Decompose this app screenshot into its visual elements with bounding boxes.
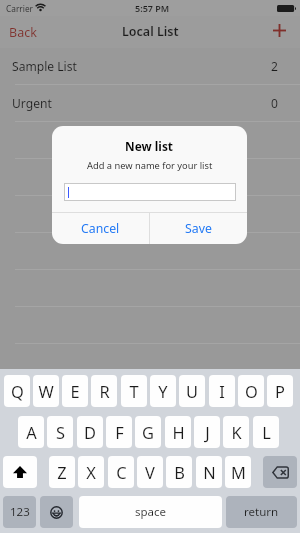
staticText: N (203, 461, 216, 483)
staticText: G (142, 421, 154, 443)
staticText: 5:57 PM (135, 2, 170, 14)
button[interactable]: return (226, 496, 297, 528)
staticText: Sample List (12, 58, 77, 74)
staticText: E (70, 380, 80, 402)
staticText: V (145, 461, 155, 483)
staticText: I (219, 380, 225, 402)
staticText: Z (57, 461, 67, 483)
staticText: F (115, 421, 124, 443)
button[interactable]: Z (49, 456, 75, 488)
button[interactable]: Save (150, 213, 247, 244)
staticText: J (205, 421, 210, 443)
button[interactable]: W (33, 375, 59, 407)
button[interactable] (65, 184, 235, 200)
button[interactable]: P (267, 375, 293, 407)
button[interactable]: K (223, 416, 249, 448)
staticText: 0 (271, 95, 278, 111)
staticText: L (262, 421, 271, 443)
button[interactable]: Shift (3, 456, 37, 488)
button[interactable]: Cancel (52, 213, 149, 244)
staticText: R (99, 380, 110, 402)
staticText: Y (158, 380, 168, 402)
button[interactable]: Sample List (0, 48, 300, 85)
staticText: O (245, 380, 258, 402)
staticText: Add a new name for your list (87, 159, 213, 172)
staticText: C (116, 461, 127, 483)
staticText: T (129, 380, 139, 402)
staticText: Cancel (81, 220, 120, 237)
button[interactable]: E (62, 375, 88, 407)
button[interactable]: N (196, 456, 222, 488)
button[interactable]: L (253, 416, 279, 448)
staticText: W (38, 380, 54, 402)
staticText: return (244, 504, 279, 520)
button[interactable]: G (135, 416, 161, 448)
staticText: New list (125, 138, 174, 154)
button[interactable]: F (106, 416, 132, 448)
staticText: A (26, 421, 37, 443)
button[interactable]: I (209, 375, 235, 407)
staticText: Q (11, 380, 24, 402)
button[interactable]: J (194, 416, 220, 448)
button[interactable]: X (78, 456, 104, 488)
button[interactable]: space (79, 496, 222, 528)
staticText: S (56, 421, 65, 443)
staticText: B (174, 461, 185, 483)
staticText: M (231, 461, 246, 483)
staticText: 123 (10, 504, 30, 520)
button[interactable]: H (165, 416, 191, 448)
button[interactable]: V (137, 456, 163, 488)
staticText: space (135, 504, 167, 520)
staticText: Carrier (6, 3, 33, 14)
button[interactable]: U (179, 375, 205, 407)
staticText: 2 (271, 58, 278, 74)
button[interactable]: Emoji (40, 496, 73, 528)
staticText: Back (9, 24, 37, 41)
button[interactable]: Q (4, 375, 30, 407)
button[interactable]: Back (0, 17, 46, 48)
button[interactable]: B (166, 456, 192, 488)
staticText: K (231, 421, 242, 443)
button[interactable]: R (91, 375, 117, 407)
button[interactable]: Backspace (263, 456, 297, 488)
staticText: Save (185, 220, 212, 237)
button[interactable]: Add list (265, 17, 300, 47)
staticText: Urgent (12, 95, 52, 111)
button[interactable]: Y (150, 375, 176, 407)
button[interactable]: M (225, 456, 251, 488)
button[interactable]: A (18, 416, 44, 448)
button[interactable]: Urgent (0, 85, 300, 122)
button[interactable]: D (77, 416, 103, 448)
staticText: Local List (122, 23, 179, 40)
button[interactable]: 123 (3, 496, 36, 528)
button[interactable]: T (121, 375, 147, 407)
staticText: U (186, 380, 198, 402)
staticText: D (84, 421, 96, 443)
button[interactable]: C (108, 456, 134, 488)
button[interactable]: O (238, 375, 264, 407)
button[interactable]: S (47, 416, 73, 448)
staticText: H (172, 421, 185, 443)
staticText: P (275, 380, 285, 402)
staticText: X (86, 461, 96, 483)
